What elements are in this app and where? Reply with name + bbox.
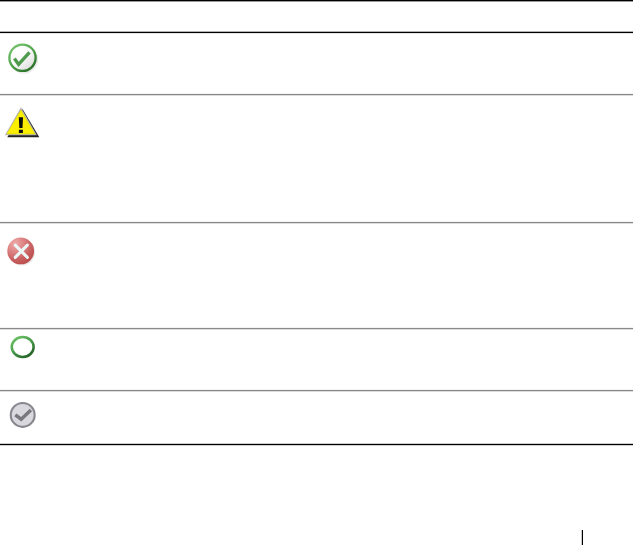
button[interactable]: Error status bbox=[0, 222, 641, 328]
button[interactable]: Warning status bbox=[0, 94, 641, 222]
button[interactable]: Success status bbox=[0, 32, 641, 94]
button[interactable]: Disabled status bbox=[0, 390, 641, 444]
button[interactable]: Pending status bbox=[0, 328, 641, 390]
button[interactable]: Icon legend header bbox=[0, 0, 641, 32]
